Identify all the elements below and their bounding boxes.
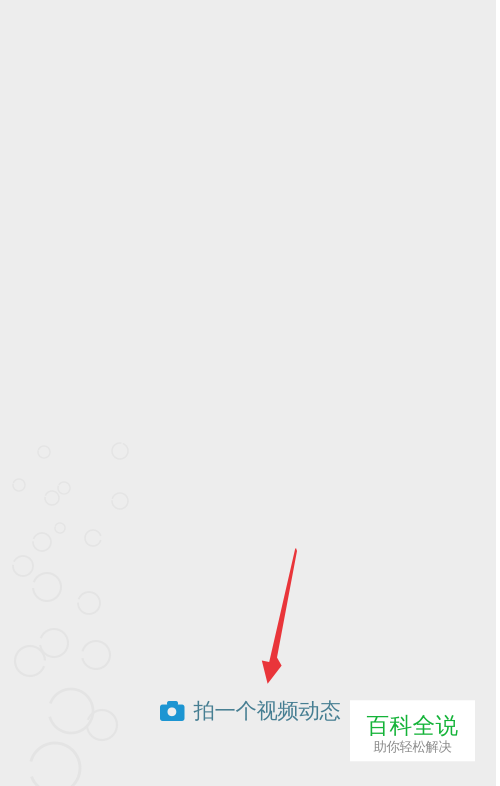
button[interactable]: 拍一个视频动态	[160, 698, 344, 724]
staticText: 助你轻松解决	[373, 739, 451, 755]
staticText: 拍一个视频动态	[193, 698, 340, 724]
staticText: 百科全说	[366, 712, 458, 740]
